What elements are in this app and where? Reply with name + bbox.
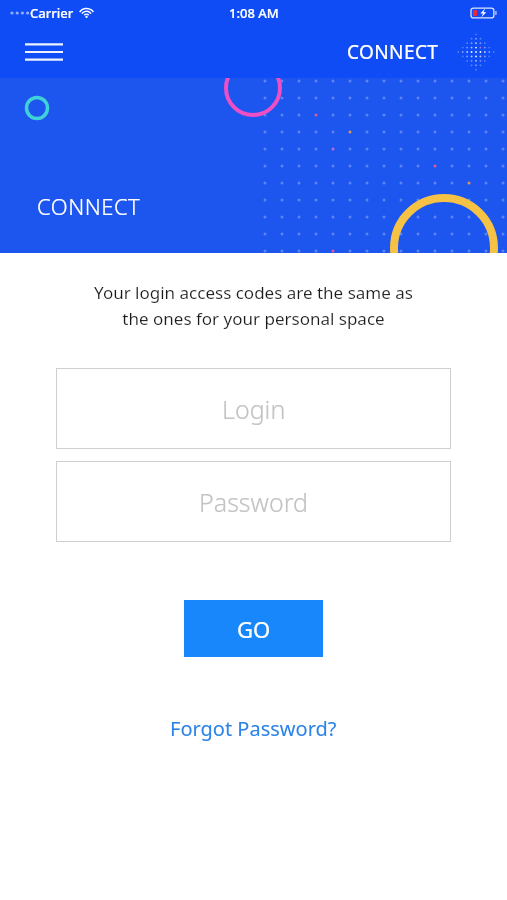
- button[interactable]: Login: [56, 368, 451, 449]
- staticText: Carrier: [30, 4, 74, 22]
- staticText: Login: [222, 392, 286, 426]
- staticText: Forgot Password?: [170, 715, 337, 742]
- staticText: 1:08 AM: [229, 4, 279, 22]
- staticText: Your login access codes are the same as …: [18, 281, 489, 330]
- staticText: GO: [237, 614, 271, 644]
- button[interactable]: Password: [56, 461, 451, 542]
- button[interactable]: Logo: [453, 29, 499, 75]
- staticText: CONNECT: [37, 191, 141, 221]
- button[interactable]: Forgot Password?: [158, 709, 349, 748]
- button[interactable]: Menu: [22, 35, 66, 69]
- button[interactable]: CONNECT: [343, 33, 443, 71]
- staticText: Password: [199, 485, 308, 519]
- staticText: CONNECT: [347, 39, 439, 65]
- button[interactable]: GO: [184, 600, 323, 657]
